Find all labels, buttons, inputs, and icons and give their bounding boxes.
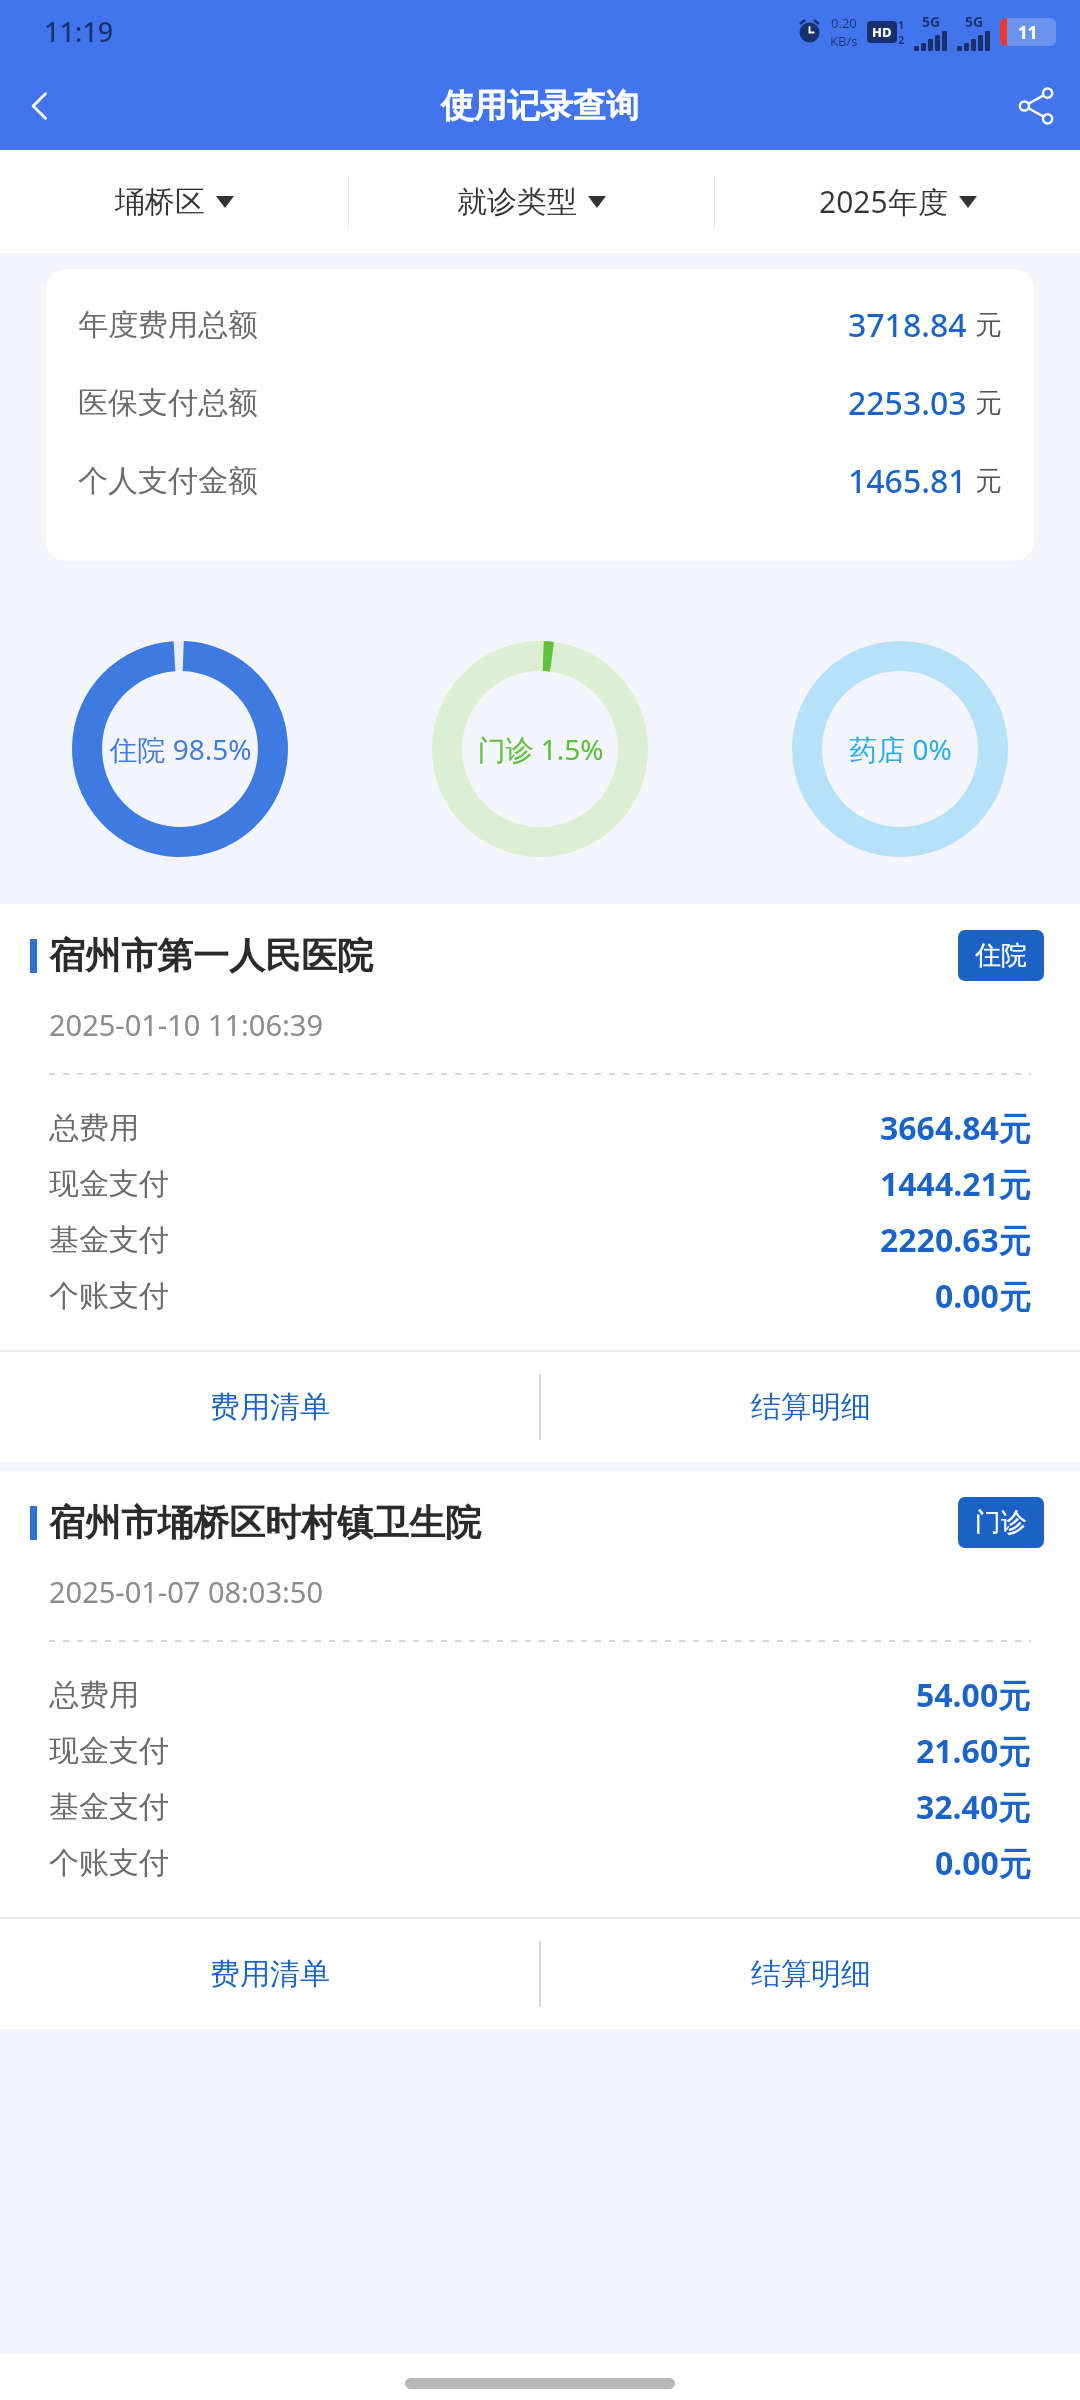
button[interactable]: 2025年度 [715,150,1080,253]
staticText: KB/s [830,32,858,50]
staticText: 1465.81 [848,459,967,503]
staticText: 住院 98.5% [109,730,252,768]
staticText: 就诊类型 [457,183,577,221]
button[interactable]: 费用清单 [0,1352,539,1462]
staticText: 现金支付 [49,1165,169,1203]
staticText: 总费用 [49,1676,139,1714]
staticText: 3718.84 [848,303,967,347]
staticText: 11 [1018,21,1038,44]
staticText: 0.00元 [935,1841,1031,1885]
staticText: 门诊 [975,1506,1027,1539]
button[interactable]: 就诊类型 [349,150,714,253]
staticText: 结算明细 [751,1388,871,1426]
staticText: 2025-01-07 08:03:50 [49,1572,323,1611]
staticText: 3664.84元 [880,1106,1031,1150]
staticText: 个账支付 [49,1844,169,1882]
button[interactable]: Back [0,66,80,146]
staticText: 宿州市埇桥区时村镇卫生院 [49,1500,481,1545]
staticText: 2025-01-10 11:06:39 [49,1005,323,1044]
staticText: 结算明细 [751,1955,871,1993]
staticText: 21.60元 [916,1729,1031,1773]
staticText: 1444.21元 [880,1162,1031,1206]
staticText: 2 [898,32,905,47]
staticText: 元 [975,464,1002,498]
staticText: 2253.03 [848,381,967,425]
staticText: 总费用 [49,1109,139,1147]
staticText: 2220.63元 [880,1218,1031,1262]
staticText: 费用清单 [210,1955,330,1993]
button[interactable]: 结算明细 [541,1352,1080,1462]
staticText: 费用清单 [210,1388,330,1426]
staticText: 0.00元 [935,1274,1031,1318]
staticText: 54.00元 [916,1673,1031,1717]
staticText: 元 [975,308,1002,342]
staticText: 埇桥区 [115,183,205,221]
staticText: 元 [975,386,1002,420]
button[interactable]: 费用清单 [0,1919,539,2029]
button[interactable]: Share [992,62,1080,150]
staticText: 现金支付 [49,1732,169,1770]
button[interactable]: 宿州市第一人民医院 [0,904,1080,1462]
staticText: 32.40元 [916,1785,1031,1829]
staticText: 门诊 1.5% [477,730,604,768]
staticText: 个账支付 [49,1277,169,1315]
staticText: HD [872,23,892,41]
staticText: 5G [965,12,984,31]
staticText: 住院 [975,939,1027,972]
staticText: 基金支付 [49,1788,169,1826]
staticText: 1 [898,17,905,32]
staticText: 0.20 [831,14,857,32]
staticText: 基金支付 [49,1221,169,1259]
staticText: 11:19 [44,13,114,50]
staticText: 年度费用总额 [78,306,258,344]
button[interactable]: 埇桥区 [0,150,348,253]
staticText: 2025年度 [819,181,948,222]
button[interactable]: 宿州市埇桥区时村镇卫生院 [0,1471,1080,2029]
staticText: 宿州市第一人民医院 [49,933,373,978]
staticText: 5G [922,12,941,31]
button[interactable]: 结算明细 [541,1919,1080,2029]
staticText: 个人支付金额 [78,462,258,500]
staticText: 使用记录查询 [441,85,639,127]
staticText: 医保支付总额 [78,384,258,422]
staticText: 药店 0% [849,730,952,768]
